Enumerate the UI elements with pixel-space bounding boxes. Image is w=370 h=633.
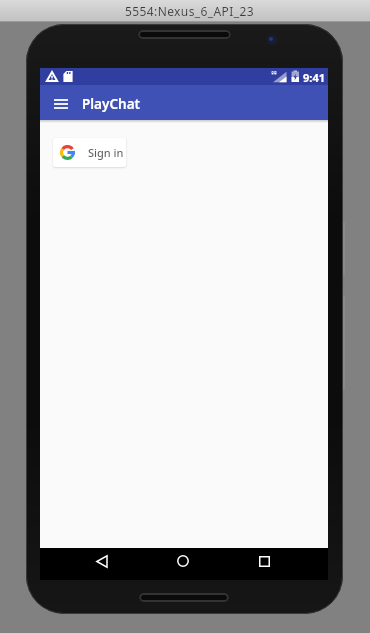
button[interactable] <box>40 85 82 120</box>
button[interactable] <box>82 548 122 580</box>
staticText: 5554:Nexus_6_API_23 <box>125 3 255 19</box>
button[interactable] <box>244 548 284 580</box>
button[interactable] <box>163 548 203 580</box>
staticText: 9:41 <box>303 70 325 85</box>
staticText: PlayChat <box>82 95 141 113</box>
staticText: Sign in <box>88 145 124 160</box>
button[interactable]: Sign in <box>53 138 126 167</box>
